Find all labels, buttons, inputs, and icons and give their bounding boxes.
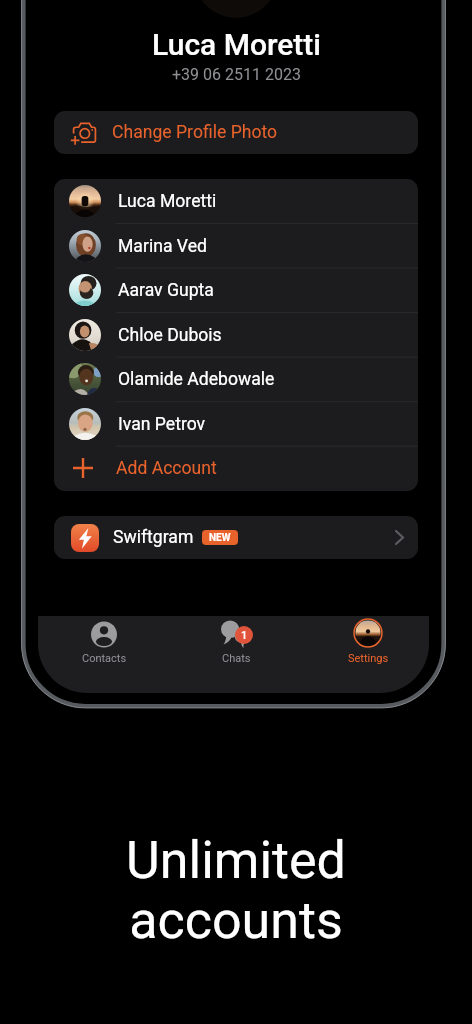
button[interactable]: Olamide Adebowale — [54, 357, 418, 401]
staticText: Swiftgram — [113, 527, 194, 548]
staticText: Contacts — [82, 652, 127, 665]
staticText: Unlimited accounts — [126, 830, 346, 950]
staticText: Chats — [222, 652, 251, 665]
staticText: Luca Moretti — [152, 27, 321, 62]
staticText: Change Profile Photo — [112, 122, 278, 143]
button[interactable]: Settings — [302, 616, 429, 693]
button[interactable]: Add Account — [54, 446, 418, 490]
staticText: Aarav Gupta — [118, 280, 214, 301]
button[interactable]: Contacts — [38, 616, 170, 693]
staticText: Luca Moretti — [118, 191, 217, 212]
staticText: Marina Ved — [118, 236, 207, 257]
staticText: Ivan Petrov — [118, 414, 206, 435]
button[interactable]: Change Profile Photo — [54, 111, 418, 154]
button[interactable]: Swiftgram — [54, 516, 418, 559]
button[interactable]: Aarav Gupta — [54, 268, 418, 312]
staticText: NEW — [209, 532, 231, 544]
button[interactable]: Luca Moretti — [54, 179, 418, 223]
staticText: +39 06 2511 2023 — [172, 65, 301, 84]
staticText: 1 — [241, 629, 248, 642]
staticText: Settings — [348, 652, 389, 665]
other: Open Swiftgram — [395, 530, 404, 545]
button[interactable]: Ivan Petrov — [54, 402, 418, 446]
staticText: Olamide Adebowale — [118, 369, 275, 390]
staticText: Chloe Dubois — [118, 325, 222, 346]
staticText: Add Account — [116, 458, 217, 479]
button[interactable]: Marina Ved — [54, 224, 418, 268]
button[interactable]: Chloe Dubois — [54, 313, 418, 357]
button[interactable]: Chats — [170, 616, 302, 693]
